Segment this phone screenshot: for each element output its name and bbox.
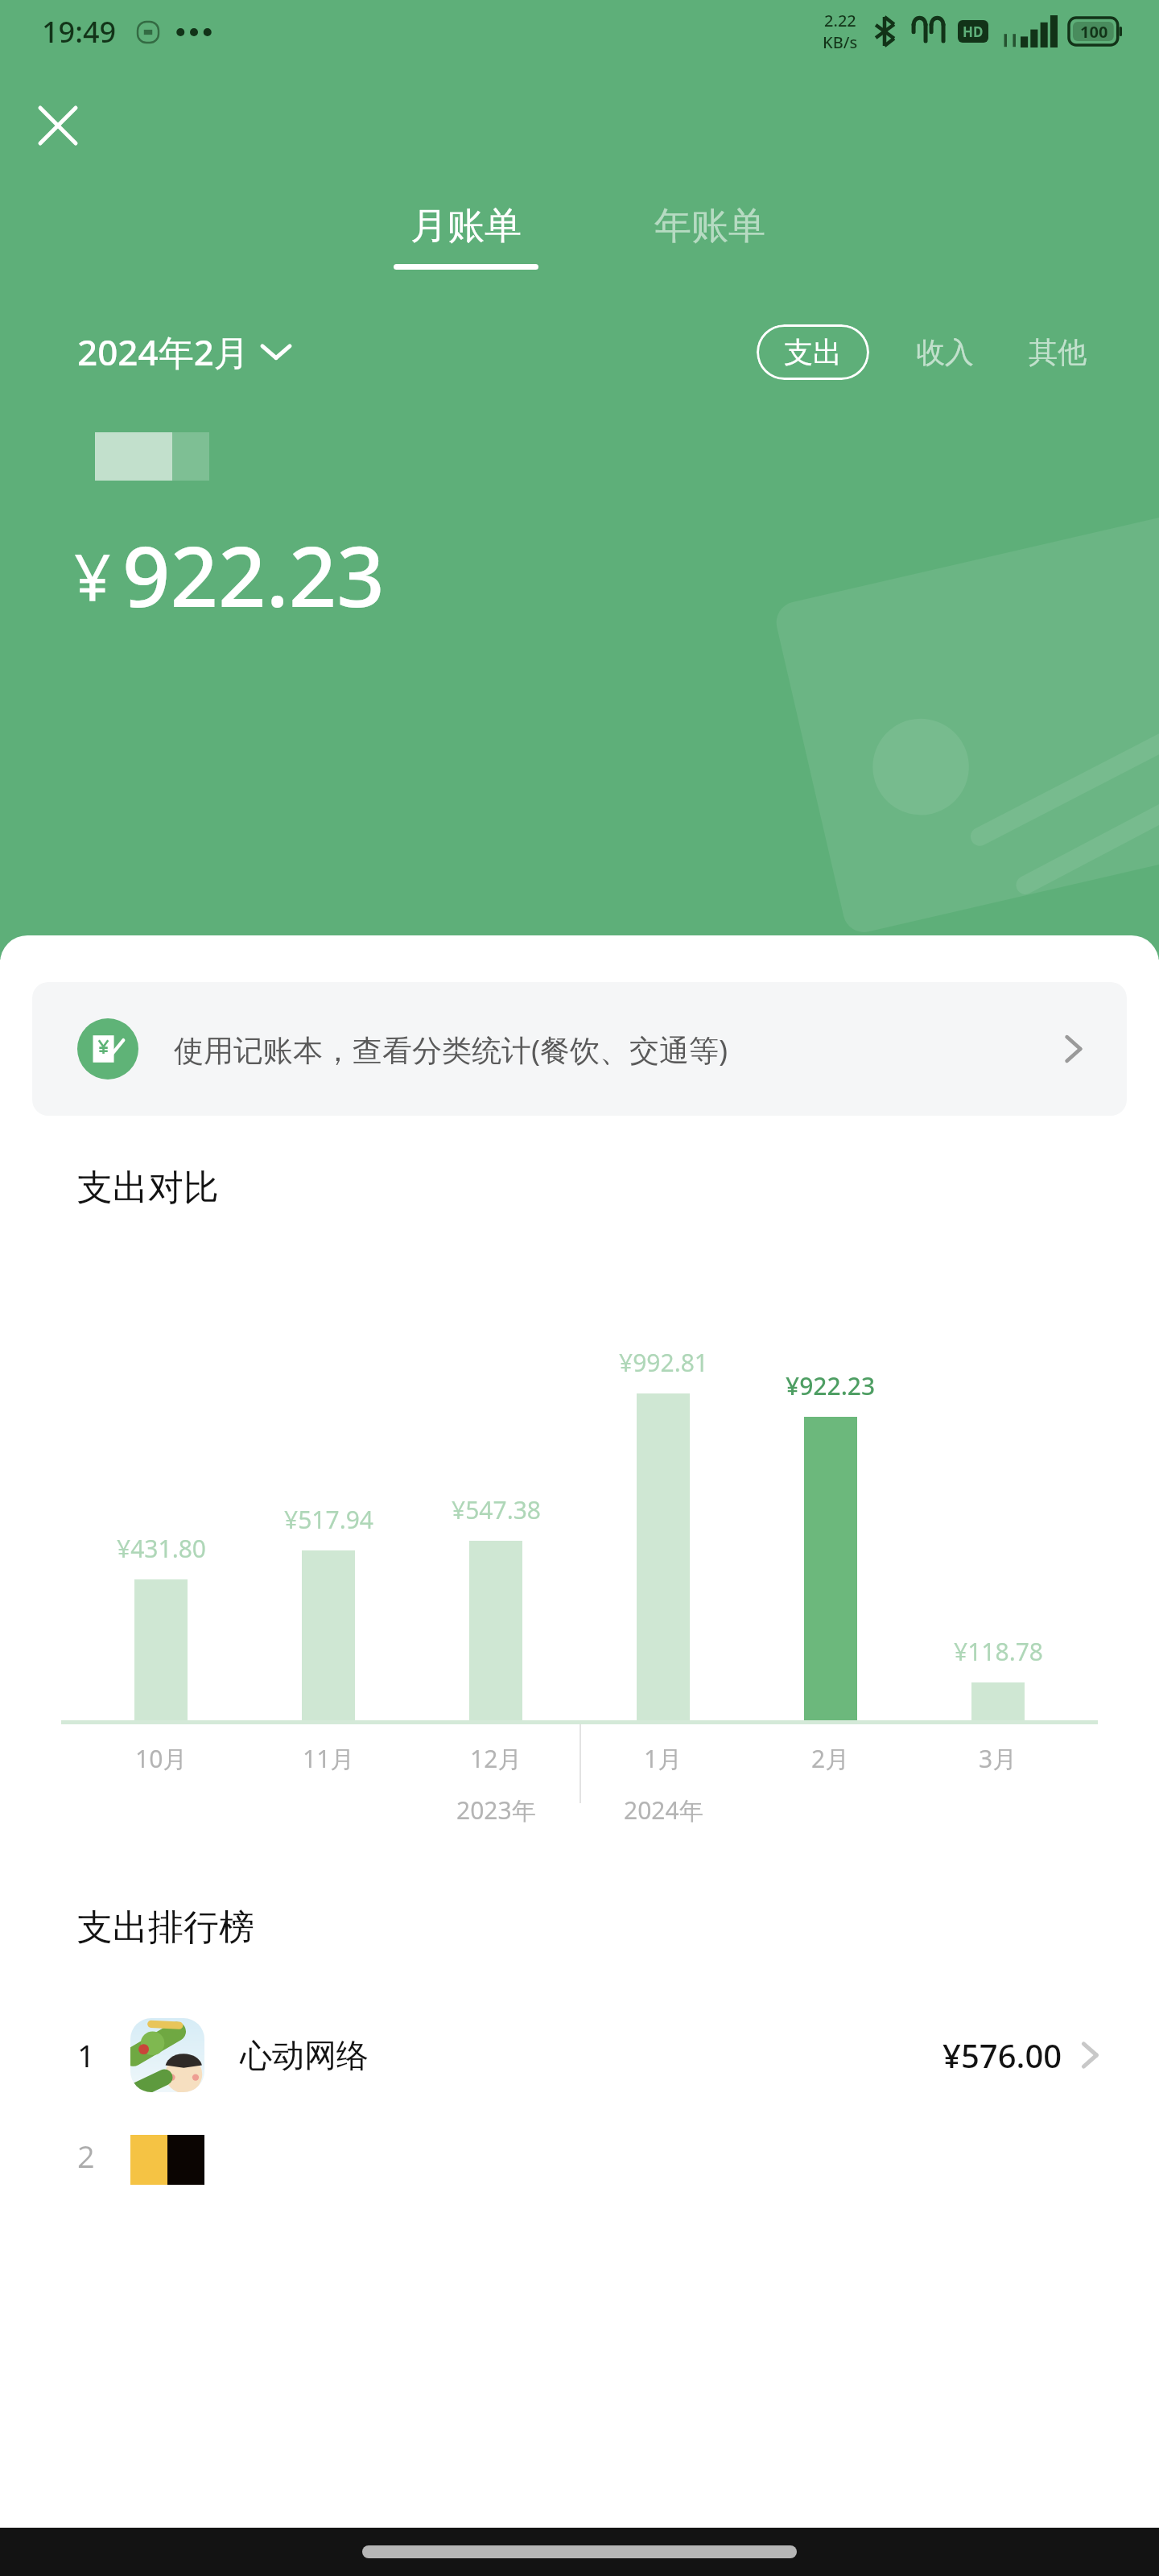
staticText: 1 [77, 2034, 95, 2076]
staticText: 收入 [916, 334, 974, 370]
button[interactable]: 2024年2月 [77, 321, 290, 382]
staticText: 2月 [811, 1742, 850, 1775]
staticText: ¥992.81 [619, 1346, 708, 1379]
staticText: 19:49 [42, 12, 117, 52]
staticText: ¥431.80 [117, 1532, 206, 1565]
staticText: 1月 [644, 1742, 683, 1775]
button[interactable]: 2 [0, 2135, 1159, 2185]
staticText: 2 [77, 2135, 95, 2177]
staticText: 2024年2月 [77, 328, 250, 376]
staticText: 月账单 [410, 203, 522, 250]
staticText: 使用记账本，查看分类统计(餐饮、交通等) [174, 1029, 728, 1070]
staticText: 12月 [470, 1742, 522, 1775]
staticText: ¥118.78 [954, 1635, 1043, 1668]
button[interactable]: 其他 [1021, 324, 1095, 380]
staticText: 10月 [135, 1742, 188, 1775]
staticText: KB/s [823, 31, 858, 53]
staticText: ¥517.94 [284, 1503, 373, 1536]
staticText: 2023年 [456, 1794, 536, 1827]
button[interactable]: 1 [0, 1995, 1159, 2116]
staticText: 3月 [979, 1742, 1017, 1775]
button[interactable]: 年账单 [640, 198, 780, 275]
button[interactable]: 使用记账本，查看分类统计(餐饮、交通等) [32, 982, 1127, 1116]
button[interactable]: 支出 [757, 324, 869, 380]
staticText: 其他 [1029, 334, 1087, 370]
staticText: 支出排行榜 [77, 1905, 254, 1950]
staticText: ¥ [74, 531, 111, 619]
staticText: ¥547.38 [452, 1493, 541, 1526]
staticText: HD [963, 23, 984, 41]
staticText: 100 [1080, 21, 1108, 43]
staticText: 心动网络 [240, 2035, 369, 2075]
button[interactable]: 月账单 [379, 198, 553, 275]
staticText: 11月 [303, 1742, 355, 1775]
button[interactable]: Close [23, 90, 93, 161]
button[interactable]: 收入 [908, 324, 982, 380]
staticText: 支出 [784, 334, 842, 370]
staticText: 2.22 [824, 10, 856, 31]
staticText: 922.23 [122, 518, 385, 632]
staticText: 2024年 [624, 1794, 703, 1827]
staticText: ¥922.23 [786, 1369, 876, 1402]
staticText: ¥576.00 [942, 2033, 1062, 2077]
staticText: 支出对比 [77, 1166, 219, 1210]
staticText: 年账单 [654, 203, 765, 250]
